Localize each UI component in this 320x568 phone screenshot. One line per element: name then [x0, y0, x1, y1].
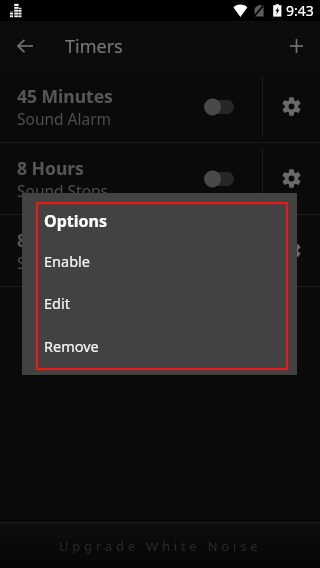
staticText: Sound Stops	[17, 252, 109, 273]
button[interactable]: Upgrade White Noise	[0, 523, 320, 568]
button[interactable]: Timer settings	[263, 215, 320, 286]
staticText: 45 Minutes	[17, 84, 113, 108]
button[interactable]: Toggle timer	[204, 71, 262, 142]
staticText: Upgrade White Noise	[59, 537, 262, 555]
staticText: 8 Hours	[17, 156, 84, 180]
staticText: Sound Stops	[17, 180, 109, 201]
button[interactable]: 8 Hours	[0, 215, 262, 286]
button[interactable]: Back	[1, 22, 49, 70]
button[interactable]: Timer settings	[263, 71, 320, 142]
button[interactable]: Toggle timer	[204, 143, 262, 214]
staticText: Timers	[65, 34, 123, 59]
staticText: Options	[44, 210, 107, 232]
staticText: 9:43	[286, 1, 314, 20]
button[interactable]: 8 Hours	[0, 143, 262, 214]
button[interactable]: 45 Minutes	[0, 71, 262, 142]
button[interactable]: Remove	[44, 336, 99, 356]
staticText: Sound Alarm	[17, 108, 112, 129]
button[interactable]: Timer settings	[263, 143, 320, 214]
button[interactable]: Add timer	[272, 22, 320, 70]
button[interactable]: Edit	[44, 293, 70, 313]
button[interactable]: Enable	[44, 251, 90, 271]
staticText: 8 Hours	[17, 228, 84, 252]
